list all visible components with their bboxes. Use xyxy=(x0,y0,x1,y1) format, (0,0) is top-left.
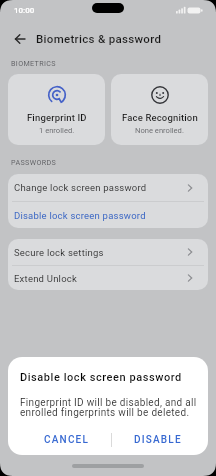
staticText: Face Recognition xyxy=(122,112,198,123)
button[interactable]: Secure lock settings xyxy=(8,239,208,265)
button[interactable]: Disable lock screen password xyxy=(8,202,208,228)
staticText: Extend Unlock xyxy=(14,273,78,284)
staticText: Biometrics & password xyxy=(36,32,162,45)
button[interactable]: Extend Unlock xyxy=(8,266,208,290)
button[interactable]: CANCEL xyxy=(22,429,112,451)
staticText: 1 enrolled. xyxy=(39,126,75,135)
staticText: Secure lock settings xyxy=(14,247,104,258)
staticText: BIOMETRICS xyxy=(11,59,56,67)
button[interactable]: Face Recognition xyxy=(111,74,208,145)
staticText: 10:00 xyxy=(14,6,35,15)
staticText: Fingerprint ID will be disabled, and all… xyxy=(20,397,197,419)
button[interactable]: DISABLE xyxy=(113,429,203,451)
staticText: Change lock screen password xyxy=(14,182,147,193)
button[interactable]: Change lock screen password xyxy=(8,174,208,201)
staticText: DISABLE xyxy=(134,434,182,446)
button[interactable]: Fingerprint ID xyxy=(8,74,105,145)
staticText: CANCEL xyxy=(44,434,90,446)
button[interactable] xyxy=(14,33,26,45)
staticText: Fingerprint ID xyxy=(27,112,87,123)
staticText: Disable lock screen password xyxy=(14,210,146,221)
staticText: Disable lock screen password xyxy=(20,371,182,384)
staticText: PASSWORDS xyxy=(11,158,57,166)
staticText: None enrolled. xyxy=(135,126,184,135)
